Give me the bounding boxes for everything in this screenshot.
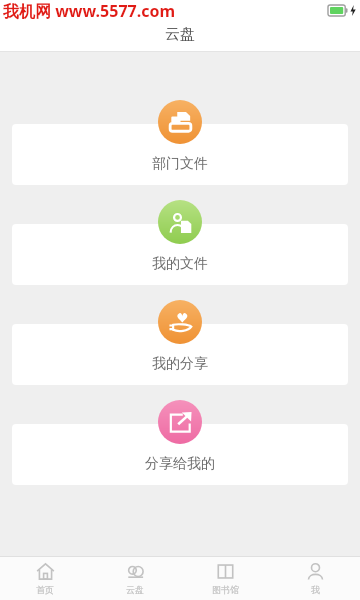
staticText: 我的文件 xyxy=(152,255,208,273)
staticText: 云盘 xyxy=(165,25,195,44)
button[interactable]: 首页 xyxy=(0,557,90,600)
staticText: 首页 xyxy=(36,584,54,595)
button[interactable]: 我的分享 xyxy=(12,324,348,385)
button[interactable]: 分享给我的 xyxy=(158,400,202,444)
staticText: 我 xyxy=(311,584,320,595)
staticText: 图书馆 xyxy=(212,584,239,595)
button[interactable]: 云盘 xyxy=(90,557,180,600)
staticText: 云盘 xyxy=(126,584,144,595)
staticText: 分享给我的 xyxy=(145,455,215,473)
button[interactable]: 分享给我的 xyxy=(12,424,348,485)
staticText: 我机网 www.5577.com xyxy=(3,0,176,20)
button[interactable]: 我的文件 xyxy=(158,200,202,244)
button[interactable]: 部门文件 xyxy=(12,124,348,185)
button[interactable]: 我的分享 xyxy=(158,300,202,344)
button[interactable]: 图书馆 xyxy=(180,557,270,600)
staticText: 我的分享 xyxy=(152,355,208,373)
button[interactable]: 部门文件 xyxy=(158,100,202,144)
button[interactable]: 我的文件 xyxy=(12,224,348,285)
staticText: 部门文件 xyxy=(152,155,208,173)
button[interactable]: 我 xyxy=(270,557,360,600)
